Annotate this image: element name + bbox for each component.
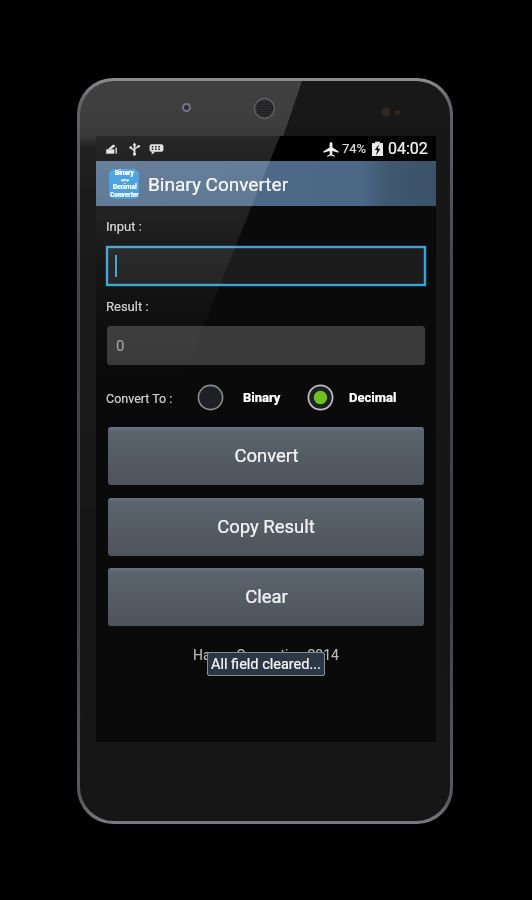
staticText: Clear — [245, 586, 288, 608]
staticText: Convert — [234, 445, 299, 467]
staticText: All field cleared... — [211, 656, 321, 673]
staticText: Decimal — [113, 183, 137, 191]
button[interactable]: Clear — [108, 568, 424, 626]
button[interactable]: Binary — [96, 161, 436, 206]
staticText: 74% — [342, 141, 367, 156]
staticText: 0 — [116, 337, 125, 355]
staticText: Binary Converter — [148, 173, 289, 195]
button[interactable]: Binary — [197, 384, 281, 411]
button[interactable]: All field cleared... — [207, 652, 325, 676]
button[interactable]: Decimal — [307, 384, 397, 411]
staticText: Binary — [115, 169, 134, 177]
staticText: Convert To : — [106, 391, 173, 406]
staticText: Copy Result — [217, 516, 315, 538]
staticText: Happy Converting 2014 — [193, 647, 339, 663]
button[interactable]: 0 — [107, 326, 425, 365]
staticText: Converter — [110, 191, 139, 199]
staticText: Decimal — [349, 390, 397, 405]
staticText: Result : — [106, 299, 149, 314]
button[interactable]: Convert — [108, 427, 424, 485]
staticText: <=> — [121, 177, 129, 183]
staticText: Input : — [106, 219, 142, 234]
button[interactable]: Copy Result — [108, 498, 424, 556]
staticText: Binary — [243, 390, 281, 405]
staticText: 04:02 — [388, 139, 428, 158]
button[interactable] — [107, 247, 425, 285]
